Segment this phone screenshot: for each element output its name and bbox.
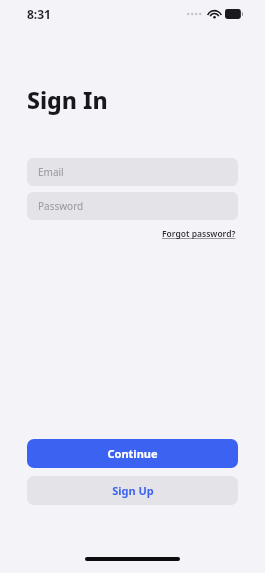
- button[interactable]: Email: [27, 158, 238, 186]
- button[interactable]: Continue: [27, 439, 238, 468]
- staticText: Sign Up: [112, 483, 154, 498]
- staticText: 8:31: [27, 6, 51, 22]
- staticText: Continue: [107, 446, 158, 461]
- button[interactable]: Password: [27, 192, 238, 220]
- button[interactable]: Forgot password?: [160, 226, 238, 242]
- staticText: Email: [38, 165, 64, 179]
- staticText: Sign In: [27, 84, 108, 115]
- other: Home indicator: [85, 557, 180, 561]
- button[interactable]: Sign Up: [27, 476, 238, 505]
- staticText: Forgot password?: [162, 228, 236, 240]
- staticText: Password: [38, 199, 84, 213]
